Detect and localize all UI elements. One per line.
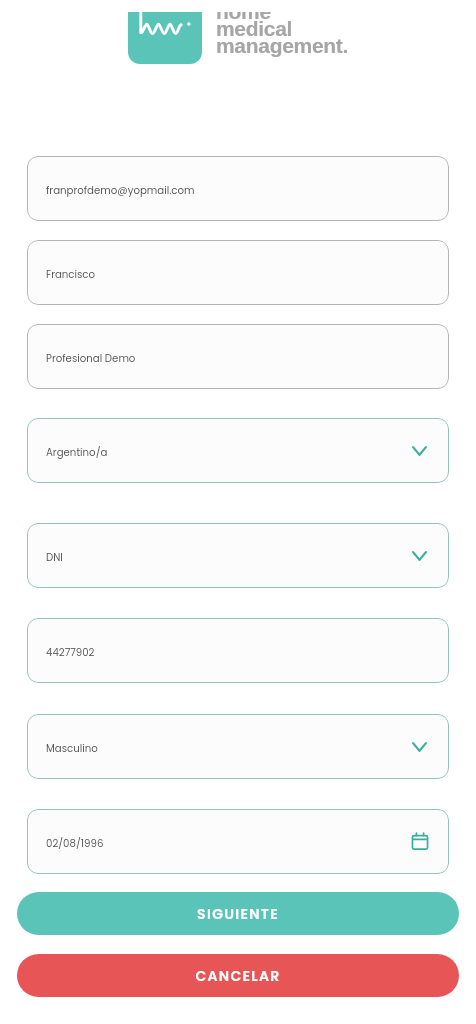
staticText: SIGUIENTE (197, 904, 279, 924)
button[interactable]: Argentino/a (27, 418, 449, 483)
staticText: franprofdemo@yopmail.com (46, 183, 195, 197)
staticText: Argentino/a (46, 445, 108, 459)
button[interactable]: DNI (27, 523, 449, 588)
staticText: Masculino (46, 741, 98, 755)
staticText: medical (216, 17, 293, 40)
button[interactable]: Francisco (27, 240, 449, 305)
staticText: 02/08/1996 (46, 836, 104, 850)
staticText: Profesional Demo (46, 351, 136, 365)
staticText: 44277902 (46, 645, 95, 659)
button[interactable]: Desplegar opciones (405, 542, 433, 570)
button[interactable]: Desplegar opciones (405, 437, 433, 465)
button[interactable]: SIGUIENTE (17, 892, 459, 935)
staticText: Francisco (46, 267, 96, 281)
button[interactable]: CANCELAR (17, 954, 459, 997)
button[interactable]: franprofdemo@yopmail.com (27, 156, 449, 221)
button[interactable]: 02/08/1996 (27, 809, 449, 874)
staticText: DNI (46, 550, 63, 564)
staticText: CANCELAR (195, 966, 281, 986)
staticText: home (216, 0, 271, 23)
button[interactable]: Elegir fecha (405, 828, 433, 856)
button[interactable]: Masculino (27, 714, 449, 779)
button[interactable]: Profesional Demo (27, 324, 449, 389)
button[interactable]: Desplegar opciones (405, 733, 433, 761)
button[interactable]: 44277902 (27, 618, 449, 683)
staticText: management. (216, 34, 349, 57)
